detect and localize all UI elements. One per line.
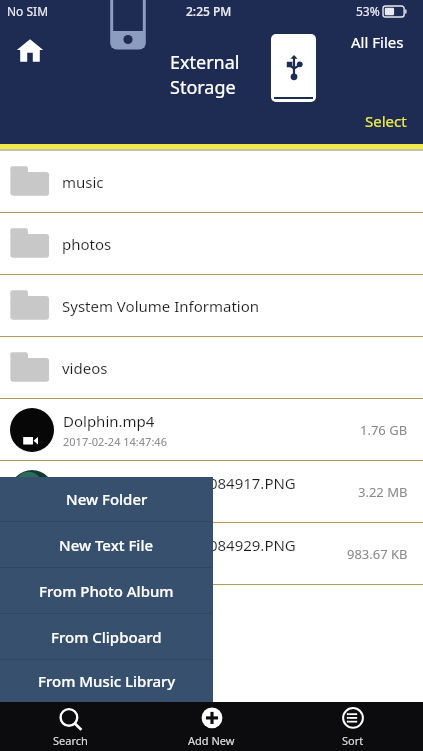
staticText: New Text File (59, 535, 154, 555)
button[interactable]: USB Storage (271, 34, 316, 102)
staticText: From Music Library (38, 671, 176, 691)
button[interactable]: IMG_1105_20170201084929.PNG (0, 523, 423, 584)
staticText: Sort (342, 733, 364, 748)
button[interactable]: Select (363, 109, 409, 133)
button[interactable]: Search (0, 702, 141, 751)
staticText: 2017-02-24 14:47:46 (63, 434, 167, 449)
staticText: System Volume Information (62, 296, 260, 316)
button[interactable]: Sort (282, 702, 423, 751)
button[interactable]: New Folder (0, 477, 213, 521)
button[interactable]: music (0, 151, 423, 212)
staticText: 1.76 GB (360, 421, 408, 439)
staticText: Search (53, 733, 88, 748)
button[interactable]: Add New (141, 702, 282, 751)
button[interactable]: All Files (349, 30, 406, 54)
staticText: IMG_1105_20170201084929.PNG (63, 535, 296, 555)
staticText: 53% (356, 3, 380, 19)
staticText: No SIM (7, 3, 49, 19)
button[interactable]: System Volume Information (0, 275, 423, 336)
button[interactable]: IMG_1104_20170201084917.PNG (0, 461, 423, 522)
staticText: External (170, 50, 240, 75)
button[interactable]: photos (0, 213, 423, 274)
button[interactable]: From Clipboard (0, 614, 213, 659)
button[interactable]: From Music Library (0, 660, 213, 702)
staticText: Select (365, 111, 407, 131)
button[interactable]: From Photo Album (0, 568, 213, 613)
button[interactable]: videos (0, 337, 423, 398)
staticText: 2:25 PM (186, 3, 232, 19)
staticText: music (62, 172, 104, 192)
button[interactable]: New Text File (0, 522, 213, 567)
staticText: 3.22 MB (358, 483, 408, 501)
staticText: 2017-02-01 08:49:17 (63, 496, 167, 511)
staticText: All Files (351, 32, 404, 52)
staticText: From Photo Album (39, 581, 174, 601)
staticText: From Clipboard (51, 627, 162, 647)
staticText: videos (62, 358, 108, 378)
staticText: Dolphin.mp4 (63, 411, 155, 431)
staticText: photos (62, 234, 112, 254)
staticText: 983.67 KB (347, 545, 408, 563)
button[interactable]: Home (12, 32, 48, 68)
button[interactable]: Dolphin.mp4 (0, 399, 423, 460)
staticText: New Folder (66, 489, 148, 509)
staticText: IMG_1104_20170201084917.PNG (63, 473, 296, 493)
staticText: Storage (170, 75, 236, 100)
staticText: Add New (188, 733, 235, 748)
